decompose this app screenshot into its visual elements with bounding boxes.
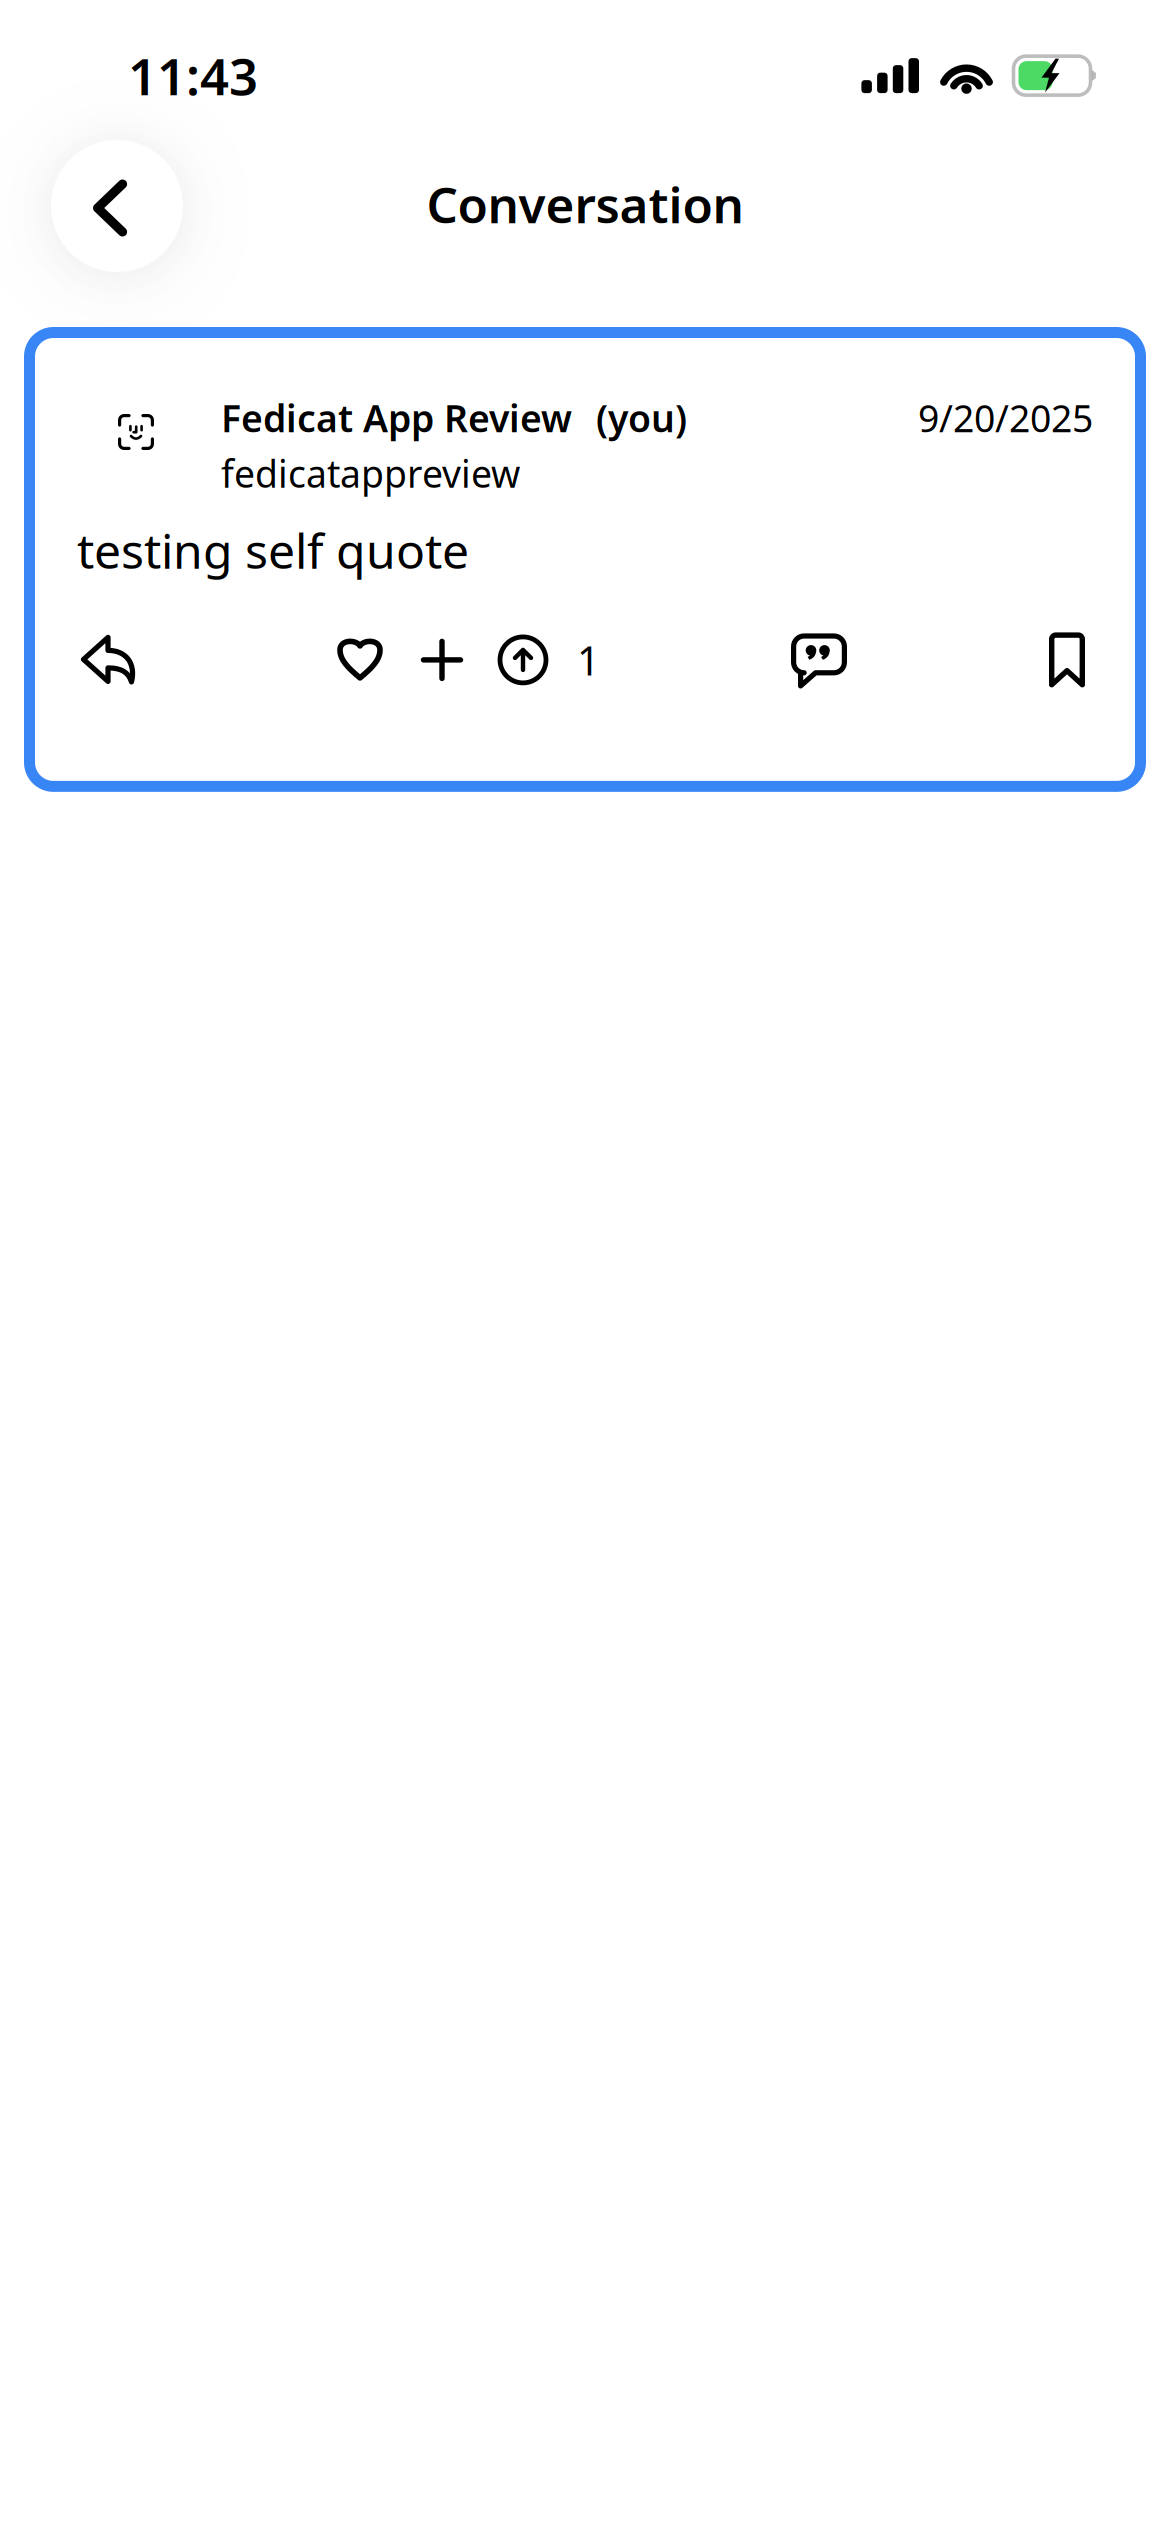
staticText: (you): [596, 393, 687, 443]
staticText: Conversation: [426, 171, 743, 237]
staticText: testing self quote: [77, 518, 469, 582]
button[interactable]: Add: [421, 630, 463, 690]
staticText: fedicatappreview: [221, 449, 520, 498]
button[interactable]: Back: [51, 140, 183, 272]
staticText: 11:43: [128, 42, 258, 109]
button[interactable]: Quote: [791, 630, 847, 690]
staticText: 9/20/2025: [918, 393, 1093, 443]
staticText: 1: [577, 633, 600, 686]
button[interactable]: Favourite: [337, 630, 387, 690]
button[interactable]: Reply: [77, 630, 139, 690]
button[interactable]: Boost: [500, 630, 600, 690]
button[interactable]: Bookmark: [1057, 630, 1093, 690]
staticText: Fedicat App Review: [221, 393, 572, 443]
